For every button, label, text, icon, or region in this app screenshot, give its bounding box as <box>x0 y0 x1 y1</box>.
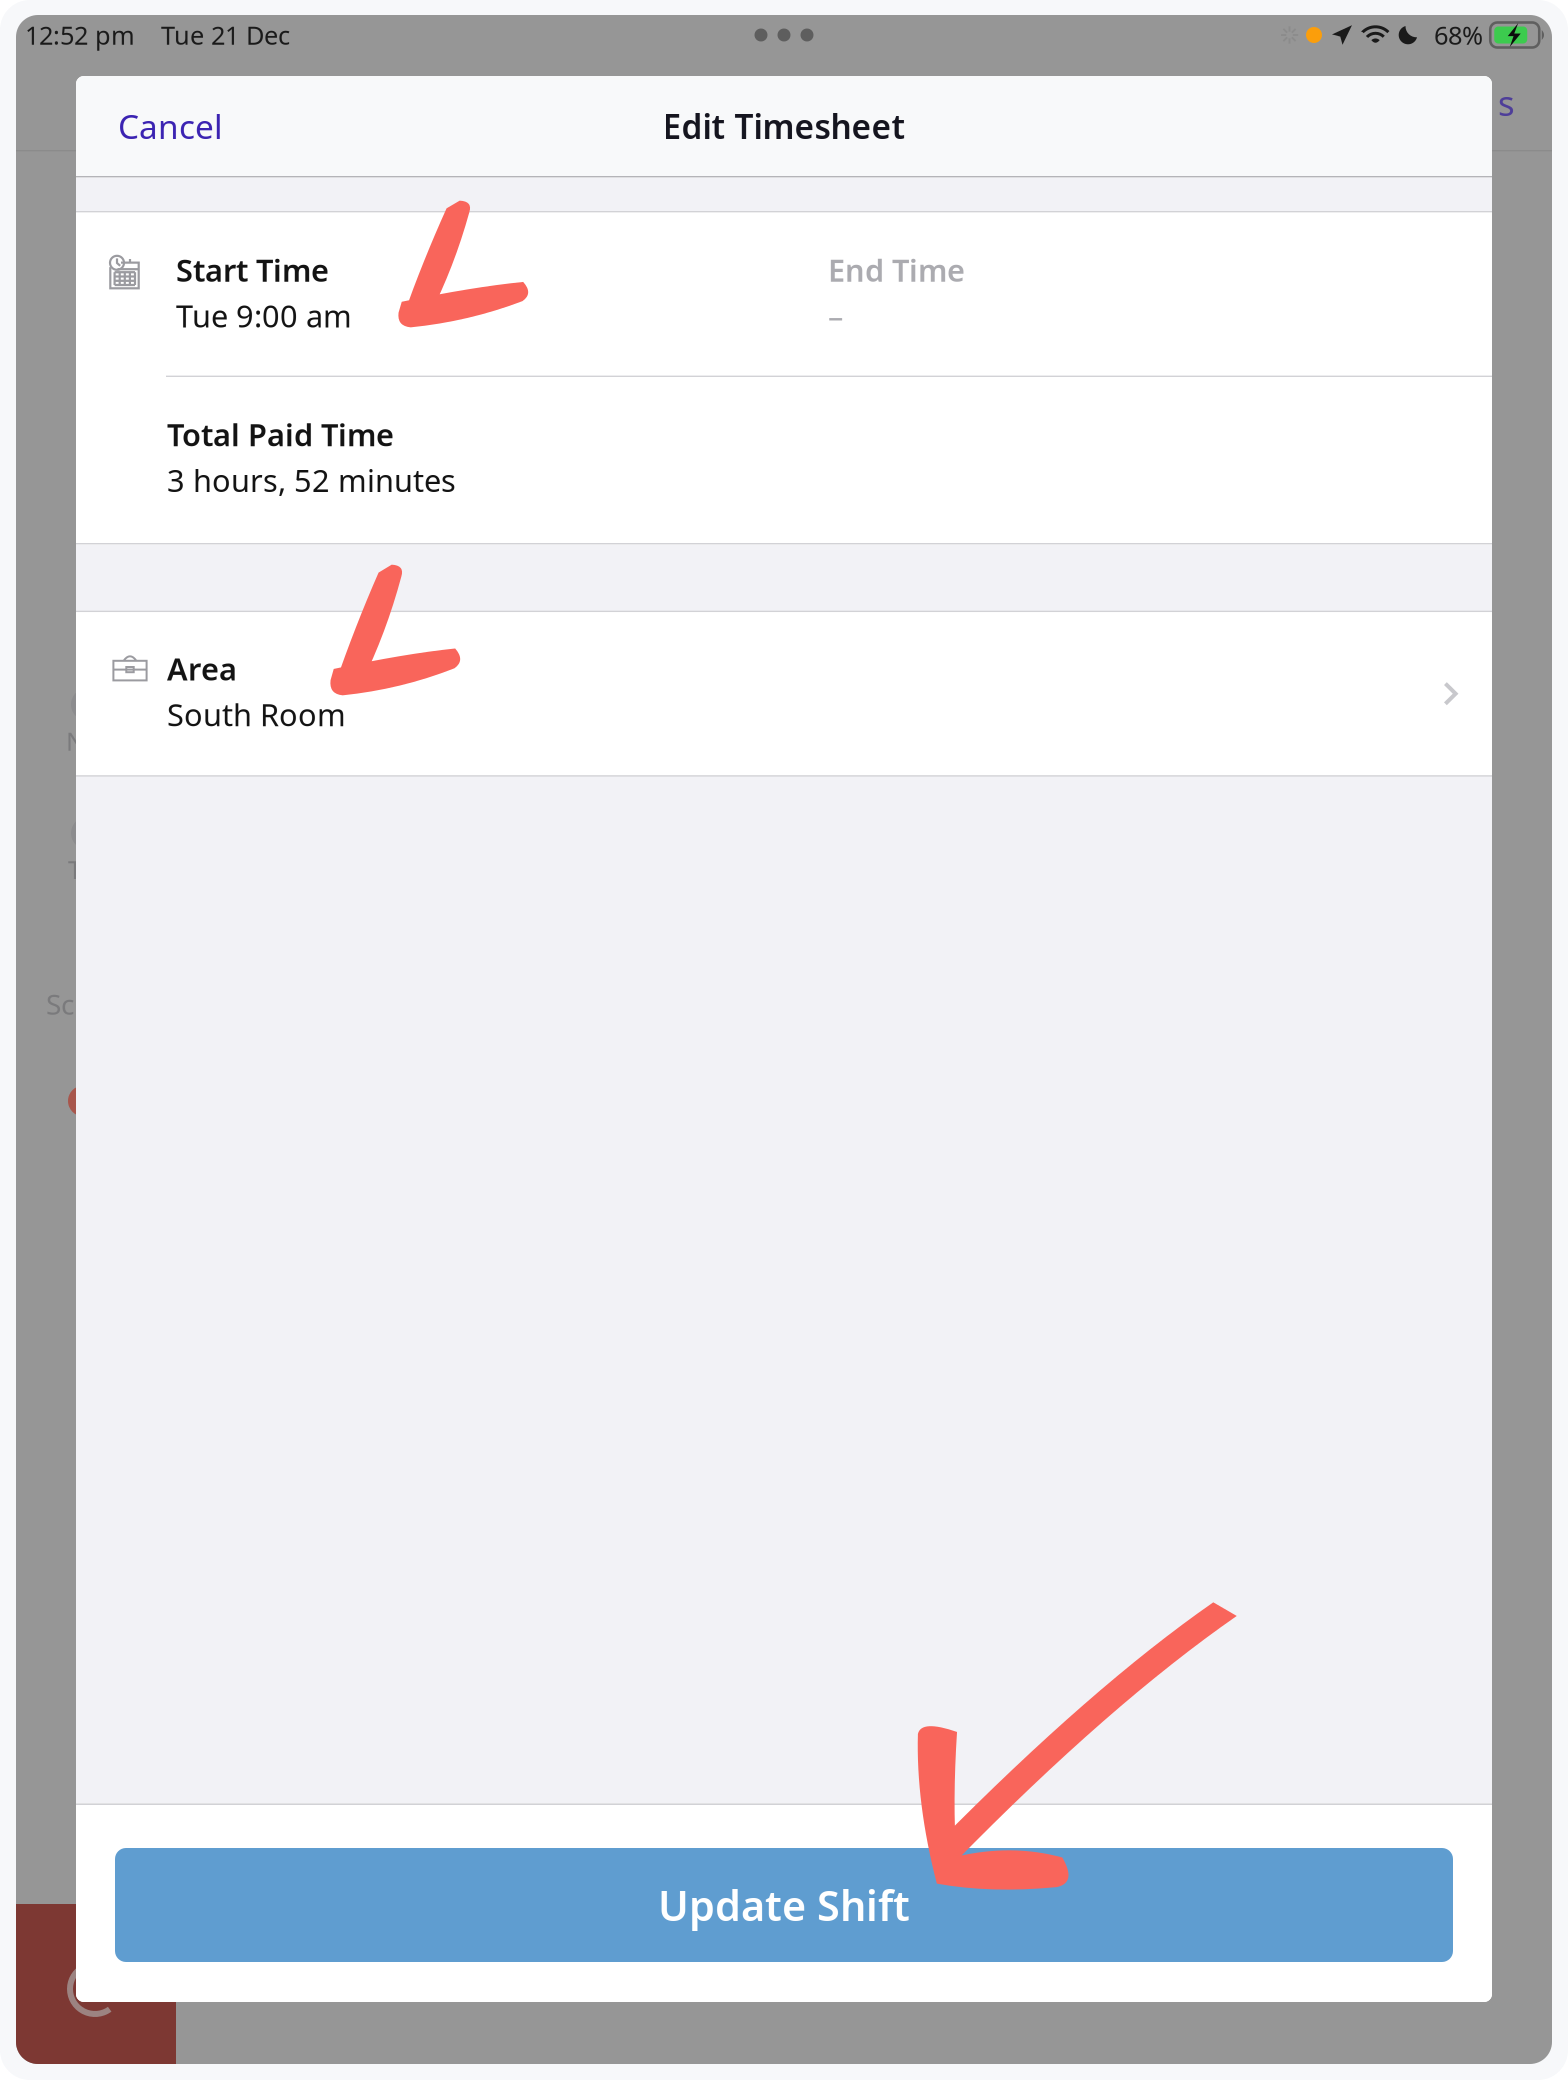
staticText: Tue 9:00 am <box>176 295 352 336</box>
staticText: 68% <box>1434 18 1483 52</box>
staticText: T <box>68 853 82 886</box>
staticText: South Room <box>167 694 346 735</box>
staticText: 3 hours, 52 minutes <box>167 460 456 500</box>
staticText: Edit Timesheet <box>662 104 905 148</box>
button[interactable]: Start Time <box>76 250 828 374</box>
button[interactable]: Area, South Room <box>76 612 1492 775</box>
button[interactable]: Cancel <box>94 88 247 164</box>
staticText: Area <box>167 648 237 689</box>
staticText: – <box>828 295 843 336</box>
staticText: Tue 21 Dec <box>161 18 290 52</box>
staticText: s <box>1498 79 1515 125</box>
staticText: Total Paid Time <box>167 414 394 455</box>
button[interactable]: Update Shift <box>115 1848 1453 1962</box>
staticText: End Time <box>828 250 965 290</box>
staticText: Start Time <box>176 250 329 290</box>
staticText: Update Shift <box>658 1878 910 1932</box>
button[interactable]: End Time <box>828 250 1128 374</box>
staticText: N <box>66 724 85 758</box>
staticText: Cancel <box>118 104 223 148</box>
staticText: 12:52 pm <box>25 18 135 52</box>
staticText: Sch <box>46 985 91 1022</box>
